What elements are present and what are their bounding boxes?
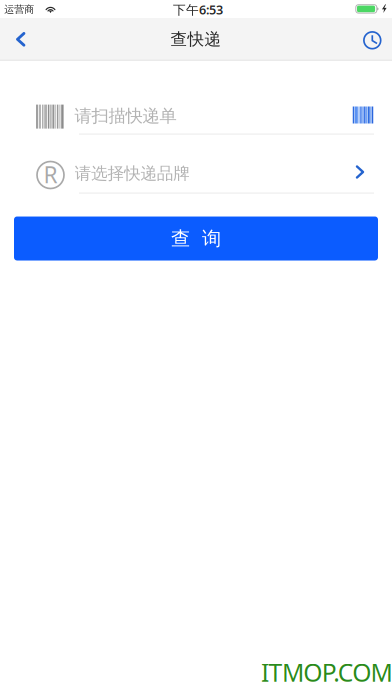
button[interactable]: 查 询: [14, 216, 378, 260]
staticText: 运营商: [4, 3, 34, 16]
button[interactable]: Choose courier brand: [346, 158, 374, 186]
staticText: 请选择快递品牌: [75, 163, 190, 184]
staticText: 查快递: [170, 29, 221, 50]
button[interactable]: Back: [4, 23, 37, 56]
staticText: R: [43, 159, 57, 190]
button[interactable]: Scan barcode: [349, 101, 377, 129]
staticText: ITMOP.COM: [261, 655, 392, 689]
staticText: 查 询: [171, 226, 221, 251]
button[interactable]: History: [356, 24, 389, 57]
staticText: 请扫描快递单: [75, 105, 177, 127]
staticText: 下午6:53: [173, 1, 223, 18]
